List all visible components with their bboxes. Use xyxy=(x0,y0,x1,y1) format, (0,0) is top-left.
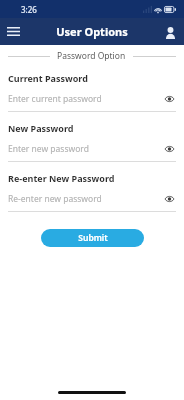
button[interactable]: Show password xyxy=(162,192,176,206)
button[interactable]: Show password xyxy=(162,142,176,156)
button[interactable]: Show password xyxy=(162,92,176,106)
button[interactable]: Re-enter New Password xyxy=(8,172,176,212)
staticText: Enter new password xyxy=(8,143,162,155)
button[interactable]: Submit xyxy=(41,229,144,247)
staticText: User Options xyxy=(56,24,128,39)
staticText: 3:26 xyxy=(21,4,37,15)
staticText: Submit xyxy=(78,232,108,244)
staticText: New Password xyxy=(8,122,74,134)
staticText: Re-enter new password xyxy=(8,193,162,205)
button[interactable]: Account xyxy=(157,18,184,45)
button[interactable]: Current Password xyxy=(8,72,176,112)
staticText: Current Password xyxy=(8,72,88,84)
button[interactable]: New Password xyxy=(8,122,176,162)
staticText: Enter current password xyxy=(8,93,162,105)
staticText: Re-enter New Password xyxy=(8,172,115,184)
staticText: Password Option xyxy=(57,50,126,62)
button[interactable]: Open navigation menu xyxy=(0,18,27,45)
